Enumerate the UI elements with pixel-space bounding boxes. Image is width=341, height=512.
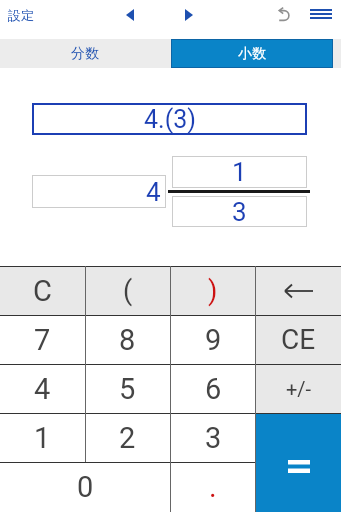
button[interactable]: .: [170, 462, 256, 512]
staticText: .: [209, 470, 217, 504]
staticText: 3: [232, 197, 247, 227]
staticText: +/-: [286, 377, 312, 400]
staticText: CE: [281, 323, 316, 356]
button[interactable]: 4: [32, 175, 166, 208]
button[interactable]: [256, 266, 341, 315]
staticText: 4: [146, 177, 161, 207]
button[interactable]: 1: [0, 413, 85, 462]
staticText: 2: [119, 421, 136, 455]
button[interactable]: (: [85, 266, 170, 315]
button[interactable]: 4.(3): [32, 103, 307, 135]
button[interactable]: +/-: [256, 364, 341, 413]
button[interactable]: 設定: [4, 0, 38, 30]
staticText: 8: [119, 323, 136, 357]
staticText: 6: [205, 372, 222, 406]
button[interactable]: 3: [172, 196, 307, 227]
staticText: 0: [77, 470, 94, 504]
staticText: 1: [34, 421, 51, 455]
button[interactable]: 8: [85, 315, 170, 364]
button[interactable]: 9: [170, 315, 256, 364]
staticText: 分数: [71, 45, 99, 63]
button[interactable]: [272, 2, 296, 26]
button[interactable]: C: [0, 266, 85, 315]
staticText: (: [123, 275, 133, 307]
button[interactable]: 6: [170, 364, 256, 413]
button[interactable]: 4: [0, 364, 85, 413]
staticText: 5: [119, 372, 136, 406]
button[interactable]: 3: [170, 413, 256, 462]
staticText: 3: [205, 421, 222, 455]
button[interactable]: 7: [0, 315, 85, 364]
staticText: 設定: [8, 7, 34, 23]
staticText: C: [33, 274, 52, 308]
button[interactable]: 5: [85, 364, 170, 413]
button[interactable]: ): [170, 266, 256, 315]
staticText: 小数: [238, 45, 266, 63]
button[interactable]: 1: [172, 156, 307, 188]
button[interactable]: 小数: [171, 39, 333, 68]
button[interactable]: [304, 1, 338, 27]
staticText: 4: [34, 372, 51, 406]
button[interactable]: 分数: [0, 39, 169, 68]
staticText: 7: [34, 323, 51, 357]
button[interactable]: [120, 4, 140, 26]
staticText: 9: [205, 323, 222, 357]
button[interactable]: 0: [0, 462, 170, 512]
button[interactable]: 2: [85, 413, 170, 462]
button[interactable]: CE: [256, 315, 341, 364]
staticText: ): [208, 275, 218, 307]
staticText: 4.(3): [144, 105, 196, 134]
button[interactable]: [256, 413, 341, 512]
button[interactable]: [179, 4, 199, 26]
staticText: 1: [232, 157, 247, 187]
